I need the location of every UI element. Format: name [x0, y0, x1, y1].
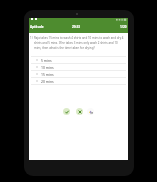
button[interactable]: Submit answer: [63, 108, 70, 115]
button[interactable]: 15 mins: [31, 71, 126, 77]
staticText: 10 mins: [41, 65, 54, 70]
button[interactable]: Report question: [87, 108, 94, 115]
staticText: 29:33: [72, 25, 80, 29]
staticText: Aptitude: [30, 25, 44, 29]
button[interactable]: 20 mins: [31, 78, 126, 84]
button[interactable]: 10 mins: [31, 64, 126, 70]
staticText: 1): [30, 36, 33, 40]
button[interactable]: 5 mins: [31, 57, 126, 63]
button[interactable]: Clear answer: [76, 108, 83, 115]
staticText: 15 mins: [41, 72, 54, 77]
staticText: 5 mins: [41, 58, 52, 63]
staticText: Raja takes 15 mins to wash 4 shirts and …: [34, 36, 125, 50]
staticText: 1/20: [120, 25, 127, 29]
staticText: 20 mins: [41, 79, 54, 84]
